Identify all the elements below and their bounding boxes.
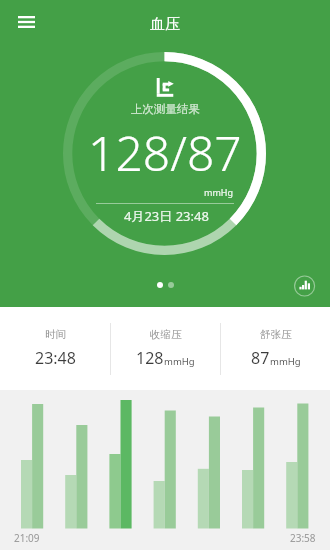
staticText: 舒张压: [260, 328, 292, 341]
button[interactable]: Menu: [11, 7, 41, 37]
button[interactable]: 舒张压: [221, 307, 330, 390]
staticText: 时间: [45, 328, 66, 341]
staticText: 87: [251, 347, 270, 369]
button[interactable]: 时间: [0, 307, 110, 390]
staticText: mmHg: [204, 186, 234, 198]
staticText: 23:48: [35, 347, 76, 369]
staticText: 23:58: [290, 531, 316, 545]
staticText: 128: [136, 347, 164, 369]
staticText: 上次测量结果: [131, 102, 200, 116]
button[interactable]: Statistics: [290, 272, 319, 301]
staticText: 128/87: [88, 120, 242, 185]
staticText: 血压: [150, 15, 180, 34]
button[interactable]: 收缩压: [111, 307, 220, 390]
staticText: 4月23日 23:48: [124, 207, 209, 225]
staticText: 21:09: [14, 531, 40, 545]
staticText: mmHg: [164, 355, 195, 368]
staticText: mmHg: [270, 355, 301, 368]
staticText: 收缩压: [150, 328, 182, 341]
